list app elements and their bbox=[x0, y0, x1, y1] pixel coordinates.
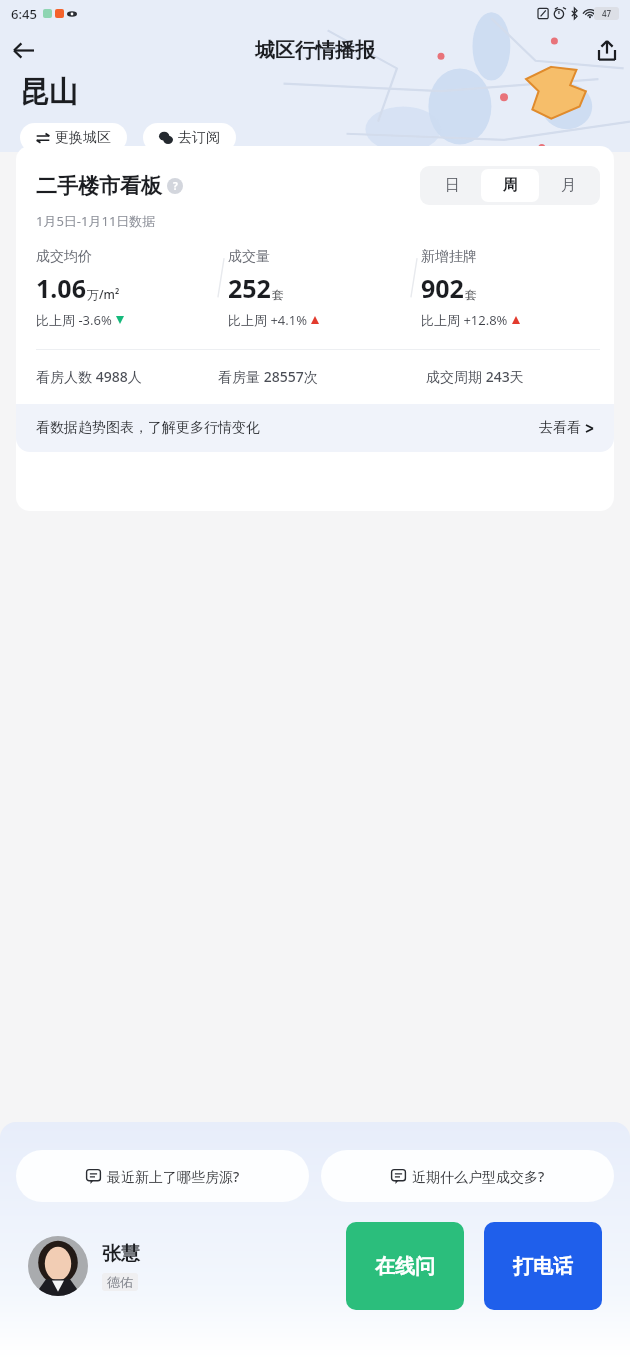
staticText: 1.06 bbox=[36, 271, 86, 305]
staticText: 1月5日-1月11日数据 bbox=[36, 212, 156, 230]
staticText: 城区价格走势 bbox=[49, 223, 169, 248]
staticText: 近期什么户型成交多? bbox=[412, 1167, 545, 1186]
staticText: 比上周 +4.1% bbox=[228, 311, 307, 329]
staticText: 竞争力 bbox=[175, 164, 226, 185]
button[interactable] bbox=[28, 1236, 88, 1296]
button[interactable]: 最近新上了哪些房源? bbox=[16, 1150, 309, 1202]
staticText: 更换城区 bbox=[55, 129, 111, 147]
staticText: 成交均价 bbox=[36, 248, 92, 266]
staticText: 成交情况 bbox=[58, 278, 122, 298]
staticText: 6:45 bbox=[11, 5, 37, 23]
staticText: 套 bbox=[381, 344, 393, 359]
button[interactable]: 看数据趋势图表，了解更多行情变化 bbox=[16, 404, 614, 452]
staticText: 万/m² bbox=[87, 286, 120, 302]
button[interactable]: 日 bbox=[423, 169, 481, 202]
button[interactable]: Share bbox=[584, 28, 630, 72]
staticText: 挂牌情况 bbox=[180, 278, 244, 298]
button[interactable]: 挂牌情况 bbox=[158, 268, 266, 308]
staticText: 成交数据 bbox=[36, 427, 112, 451]
staticText: 日 bbox=[445, 176, 460, 195]
staticText: 47 bbox=[602, 8, 612, 19]
button[interactable]: 成交情况 bbox=[36, 268, 144, 308]
staticText: 张慧 bbox=[102, 1242, 140, 1266]
staticText: 德佑 bbox=[107, 1274, 133, 1290]
staticText: 价格走势 bbox=[20, 164, 88, 185]
staticText: 成交量 bbox=[228, 248, 270, 266]
staticText: 套 bbox=[465, 287, 477, 302]
staticText: 月 bbox=[561, 176, 576, 195]
staticText: 去看看 bbox=[539, 419, 581, 437]
button[interactable]: 竞争力 bbox=[175, 158, 244, 191]
staticText: 万/m² bbox=[86, 343, 119, 359]
staticText: 近1年成交量 bbox=[309, 367, 388, 386]
button[interactable]: 周 bbox=[481, 169, 539, 202]
staticText: 城区行情播报 bbox=[46, 38, 584, 63]
staticText: 套 bbox=[272, 287, 284, 302]
button[interactable]: 价格走势 bbox=[20, 158, 106, 191]
staticText: 成交周期 243天 bbox=[426, 367, 600, 386]
staticText: 流通性 bbox=[106, 164, 157, 185]
staticText: 去订阅 bbox=[178, 129, 220, 147]
staticText: 在线问 bbox=[375, 1254, 435, 1279]
staticText: 比上周 -3.6% bbox=[36, 311, 112, 329]
staticText: 12874 bbox=[309, 328, 381, 362]
staticText: 252 bbox=[228, 271, 271, 305]
button[interactable]: 近期什么户型成交多? bbox=[321, 1150, 614, 1202]
staticText: 最近新上了哪些房源? bbox=[107, 1167, 240, 1186]
staticText: 902 bbox=[421, 271, 464, 305]
staticText: 看房人数 4988人 bbox=[36, 367, 218, 386]
staticText: 周 bbox=[503, 176, 518, 195]
staticText: 新增挂牌 bbox=[421, 248, 477, 266]
button[interactable]: 去订阅 bbox=[143, 123, 236, 152]
staticText: 比上周 +12.8% bbox=[421, 311, 508, 329]
button[interactable]: 更换城区 bbox=[20, 123, 127, 152]
button[interactable]: 月 bbox=[539, 169, 597, 202]
button[interactable]: 打电话 bbox=[484, 1222, 602, 1310]
staticText: ? bbox=[173, 179, 178, 193]
staticText: 看房量 28557次 bbox=[218, 367, 426, 386]
staticText: 二手楼市看板 bbox=[36, 173, 162, 199]
staticText: 1.18 bbox=[36, 328, 86, 362]
button[interactable]: 流通性 bbox=[106, 158, 175, 191]
button[interactable]: 说明 bbox=[167, 178, 183, 194]
button[interactable]: 在线问 bbox=[346, 1222, 464, 1310]
button[interactable]: Back bbox=[0, 28, 46, 72]
staticText: 看数据趋势图表，了解更多行情变化 bbox=[36, 419, 260, 437]
staticText: 打电话 bbox=[513, 1254, 573, 1279]
staticText: 昆山 bbox=[20, 74, 78, 111]
staticText: 近1年成交均价 bbox=[36, 367, 129, 386]
